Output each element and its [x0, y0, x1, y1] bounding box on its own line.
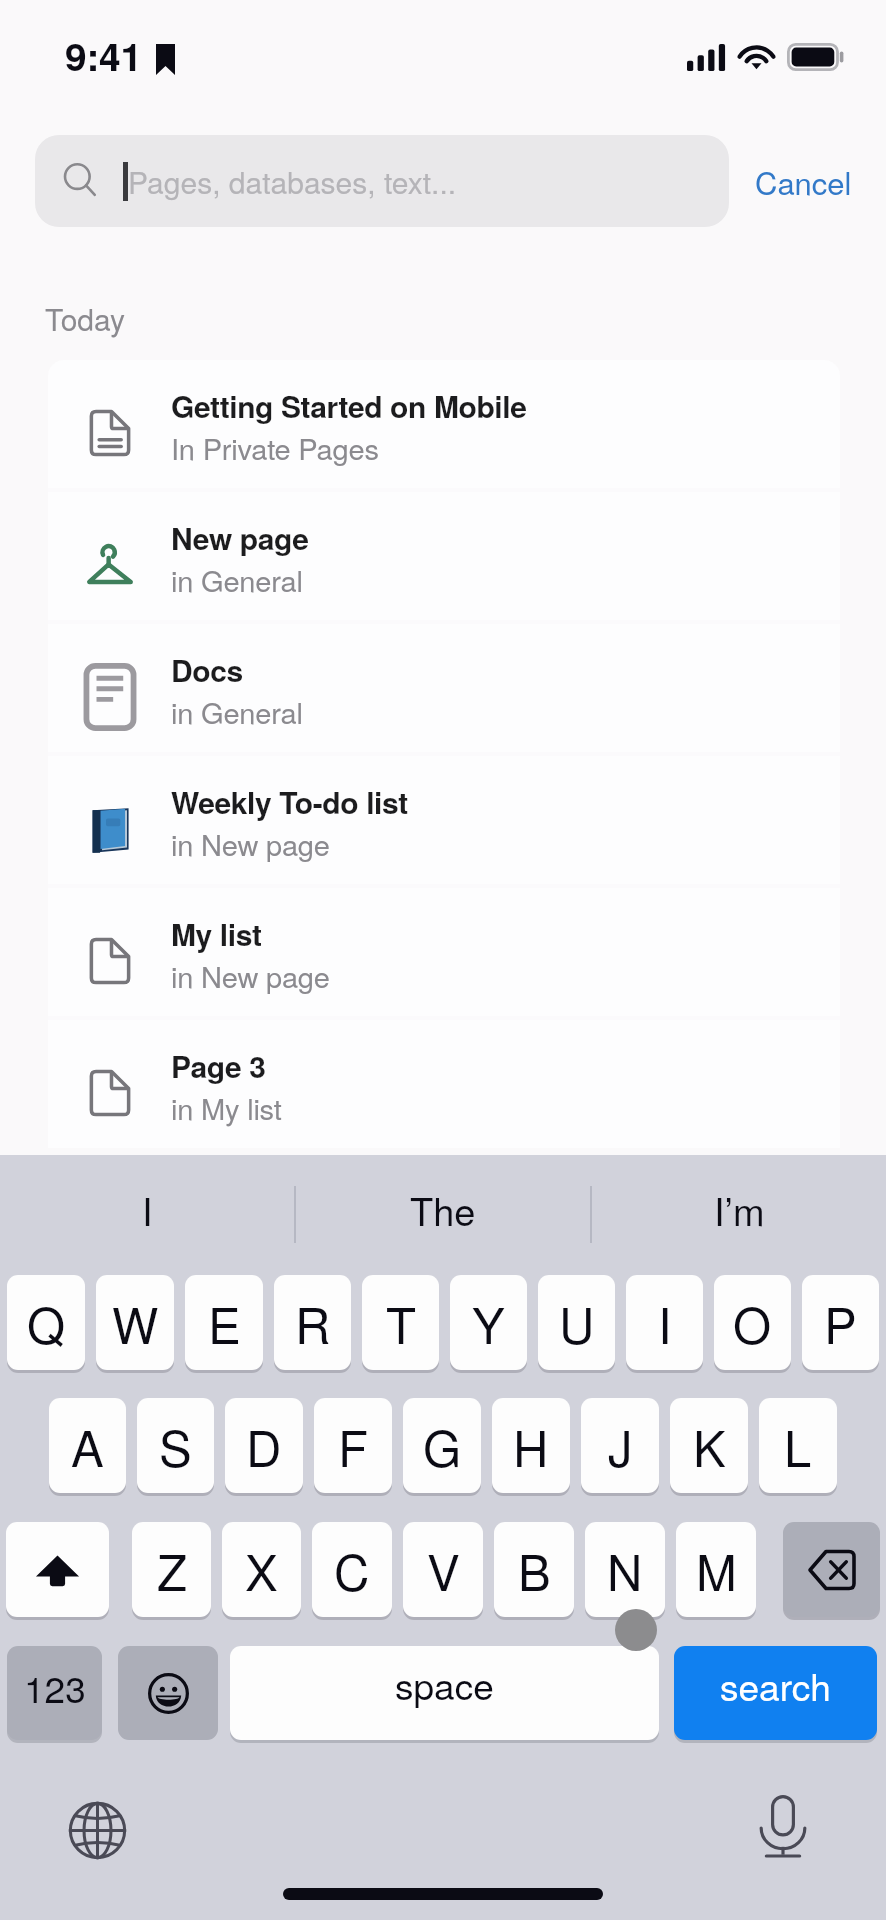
button[interactable]: Shift — [6, 1522, 109, 1617]
button[interactable]: New page — [48, 492, 840, 620]
button[interactable]: Y — [450, 1275, 527, 1370]
staticText: Pages, databases, text... — [128, 160, 457, 203]
button[interactable]: Getting Started on Mobile — [48, 360, 840, 488]
staticText: F — [338, 1411, 368, 1481]
button[interactable]: I — [626, 1275, 703, 1370]
button[interactable]: H — [492, 1398, 570, 1493]
button[interactable]: My list — [48, 888, 840, 1016]
staticText: Today — [45, 297, 125, 340]
button[interactable]: N — [585, 1522, 665, 1617]
button[interactable]: K — [670, 1398, 748, 1493]
staticText: I’m — [714, 1182, 765, 1236]
button[interactable]: Dictation — [757, 1794, 809, 1860]
staticText: X — [245, 1535, 278, 1605]
button[interactable]: C — [312, 1522, 392, 1617]
button[interactable]: W — [96, 1275, 174, 1370]
button[interactable]: X — [222, 1522, 301, 1617]
staticText: in New page — [171, 955, 330, 997]
button[interactable]: T — [362, 1275, 439, 1370]
staticText: E — [208, 1288, 241, 1358]
button[interactable]: U — [538, 1275, 615, 1370]
button[interactable]: Q — [7, 1275, 85, 1370]
button[interactable]: G — [403, 1398, 481, 1493]
button[interactable]: A — [49, 1398, 126, 1493]
staticText: S — [159, 1411, 192, 1481]
button[interactable]: D — [225, 1398, 303, 1493]
staticText: J — [608, 1411, 633, 1481]
button[interactable]: I’m — [592, 1155, 886, 1273]
staticText: T — [386, 1288, 416, 1358]
staticText: Q — [27, 1288, 66, 1358]
staticText: 9:41 — [65, 27, 142, 83]
staticText: in General — [171, 691, 303, 733]
staticText: R — [295, 1288, 331, 1358]
button[interactable]: space — [230, 1646, 659, 1740]
button[interactable]: Pages, databases, text... — [35, 135, 729, 227]
staticText: 123 — [24, 1661, 86, 1714]
staticText: K — [693, 1411, 726, 1481]
staticText: V — [427, 1535, 460, 1605]
staticText: Y — [472, 1288, 505, 1358]
staticText: Page 3 — [171, 1044, 266, 1087]
staticText: in My list — [171, 1087, 282, 1129]
staticText: in General — [171, 559, 303, 601]
staticText: in New page — [171, 823, 330, 865]
button[interactable]: Docs — [48, 624, 840, 752]
staticText: Z — [157, 1535, 187, 1605]
staticText: Getting Started on Mobile — [171, 384, 527, 427]
staticText: space — [395, 1658, 494, 1711]
staticText: Cancel — [755, 159, 852, 203]
staticText: U — [559, 1288, 595, 1358]
button[interactable]: I — [0, 1155, 294, 1273]
button[interactable]: P — [802, 1275, 879, 1370]
button[interactable]: Weekly To-do list — [48, 756, 840, 884]
button[interactable]: M — [676, 1522, 756, 1617]
staticText: O — [733, 1288, 772, 1358]
button[interactable]: Change keyboard — [67, 1800, 128, 1861]
staticText: L — [784, 1411, 812, 1481]
button[interactable]: Z — [132, 1522, 211, 1617]
staticText: My list — [171, 912, 262, 955]
staticText: In Private Pages — [171, 427, 379, 469]
staticText: The — [410, 1182, 476, 1236]
button[interactable]: F — [314, 1398, 392, 1493]
button[interactable]: Backspace — [783, 1522, 880, 1617]
button[interactable]: Cancel — [729, 149, 886, 213]
staticText: P — [824, 1288, 857, 1358]
button[interactable]: The — [296, 1155, 590, 1273]
button[interactable]: R — [274, 1275, 351, 1370]
staticText: N — [607, 1535, 643, 1605]
staticText: M — [696, 1535, 737, 1605]
button[interactable]: search — [674, 1646, 877, 1740]
staticText: H — [513, 1411, 549, 1481]
button[interactable]: S — [137, 1398, 214, 1493]
button[interactable]: O — [714, 1275, 791, 1370]
staticText: W — [112, 1288, 159, 1358]
button[interactable]: V — [403, 1522, 483, 1617]
staticText: Weekly To-do list — [171, 780, 408, 823]
button[interactable]: E — [185, 1275, 263, 1370]
button[interactable]: Emoji — [118, 1646, 218, 1740]
staticText: New page — [171, 516, 309, 559]
button[interactable]: B — [494, 1522, 574, 1617]
staticText: C — [334, 1535, 370, 1605]
staticText: G — [423, 1411, 462, 1481]
staticText: search — [720, 1659, 831, 1712]
button[interactable]: Page 3 — [48, 1020, 840, 1148]
staticText: I — [658, 1288, 672, 1358]
staticText: I — [142, 1182, 153, 1236]
button[interactable]: L — [759, 1398, 837, 1493]
staticText: A — [71, 1411, 104, 1481]
staticText: D — [246, 1411, 282, 1481]
staticText: B — [518, 1535, 551, 1605]
button[interactable]: 123 — [7, 1646, 102, 1740]
button[interactable]: J — [581, 1398, 659, 1493]
staticText: Docs — [171, 648, 243, 691]
